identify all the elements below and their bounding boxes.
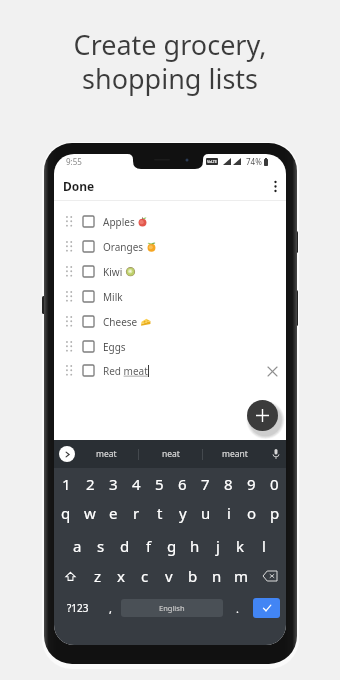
button[interactable]: o <box>240 501 263 525</box>
button[interactable]: w <box>78 501 102 525</box>
staticText: 9:55 <box>66 156 82 167</box>
button[interactable]: . <box>224 595 250 621</box>
button[interactable]: 7 <box>194 472 217 496</box>
button[interactable]: a <box>65 534 89 558</box>
button[interactable]: Shift <box>54 564 86 588</box>
button[interactable]: 1 <box>54 472 78 496</box>
button[interactable]: Oranges <box>54 234 286 259</box>
staticText: 7 <box>201 474 210 494</box>
button[interactable]: d <box>113 534 137 558</box>
button[interactable]: s <box>89 534 113 558</box>
button[interactable]: 6 <box>171 472 194 496</box>
button[interactable]: j <box>206 534 229 558</box>
button[interactable]: h <box>183 534 206 558</box>
staticText: 2 <box>86 474 95 494</box>
button[interactable]: m <box>229 564 253 588</box>
staticText: o <box>247 503 257 523</box>
button[interactable]: 3 <box>102 472 125 496</box>
button[interactable]: q <box>54 501 78 525</box>
button[interactable]: More options <box>267 178 284 195</box>
button[interactable]: Done <box>63 178 95 194</box>
button[interactable]: ?123 <box>56 595 100 621</box>
staticText: English <box>159 603 185 613</box>
button[interactable]: 8 <box>217 472 240 496</box>
staticText: Oranges <box>103 240 144 254</box>
button[interactable]: r <box>125 501 148 525</box>
button[interactable]: Apples <box>54 209 286 234</box>
staticText: i <box>227 503 231 523</box>
button[interactable]: More suggestions <box>59 446 75 462</box>
staticText: 3 <box>109 474 118 494</box>
button[interactable]: g <box>160 534 183 558</box>
staticText: v <box>165 566 173 586</box>
button[interactable]: z <box>86 564 109 588</box>
staticText: e <box>109 503 118 523</box>
staticText: a <box>73 536 82 556</box>
button[interactable]: Voice input <box>266 440 286 468</box>
staticText: f <box>146 536 152 556</box>
button[interactable]: i <box>217 501 240 525</box>
staticText: Cheese <box>103 315 138 329</box>
staticText: Apples <box>103 215 135 229</box>
button[interactable]: Add item <box>247 400 278 431</box>
button[interactable]: English <box>121 599 223 617</box>
staticText: h <box>190 536 200 556</box>
button[interactable]: 5 <box>148 472 171 496</box>
button[interactable]: v <box>157 564 181 588</box>
staticText: k <box>236 536 245 556</box>
button[interactable]: t <box>148 501 171 525</box>
staticText: 9 <box>247 474 256 494</box>
staticText: s <box>97 536 105 556</box>
button[interactable]: u <box>194 501 217 525</box>
button[interactable]: e <box>102 501 125 525</box>
staticText: 1 <box>62 474 71 494</box>
staticText: 5 <box>155 474 164 494</box>
button[interactable]: y <box>171 501 194 525</box>
button[interactable]: meant <box>203 440 266 468</box>
staticText: , <box>109 601 112 616</box>
staticText: . <box>236 601 239 616</box>
button[interactable]: p <box>263 501 286 525</box>
staticText: p <box>270 503 280 523</box>
button[interactable]: n <box>205 564 229 588</box>
staticText: meant <box>222 448 248 460</box>
staticText: 8 <box>224 474 233 494</box>
staticText: g <box>167 536 177 556</box>
button[interactable]: neat <box>139 440 202 468</box>
staticText: b <box>188 566 198 586</box>
button[interactable]: b <box>181 564 205 588</box>
staticText: u <box>201 503 211 523</box>
button[interactable]: Red meat <box>54 358 286 383</box>
button[interactable]: 0 <box>263 472 286 496</box>
button[interactable]: l <box>252 534 275 558</box>
staticText: r <box>133 503 140 523</box>
button[interactable]: 9 <box>240 472 263 496</box>
button[interactable]: k <box>229 534 252 558</box>
staticText: Red meat <box>103 364 148 378</box>
staticText: n <box>212 566 222 586</box>
button[interactable]: , <box>100 595 121 621</box>
button[interactable]: Backspace <box>253 564 286 588</box>
button[interactable]: 4 <box>125 472 148 496</box>
button[interactable]: Eggs <box>54 334 286 359</box>
button[interactable]: Cheese <box>54 309 286 334</box>
staticText: meat <box>96 448 117 460</box>
staticText: z <box>94 566 102 586</box>
button[interactable]: 2 <box>78 472 102 496</box>
button[interactable]: c <box>133 564 157 588</box>
staticText: y <box>179 503 187 523</box>
button[interactable]: x <box>109 564 133 588</box>
staticText: neat <box>162 448 180 460</box>
button[interactable]: Enter <box>253 598 280 618</box>
button[interactable]: f <box>137 534 160 558</box>
button[interactable]: meat <box>75 440 138 468</box>
staticText: c <box>141 566 149 586</box>
staticText: 4 <box>132 474 141 494</box>
staticText: j <box>216 536 220 556</box>
staticText: 74% <box>246 156 262 167</box>
staticText: m <box>234 566 249 586</box>
button[interactable]: Clear text <box>263 362 281 380</box>
button[interactable]: Kiwi <box>54 259 286 284</box>
staticText: Milk <box>103 290 123 304</box>
button[interactable]: Milk <box>54 284 286 309</box>
